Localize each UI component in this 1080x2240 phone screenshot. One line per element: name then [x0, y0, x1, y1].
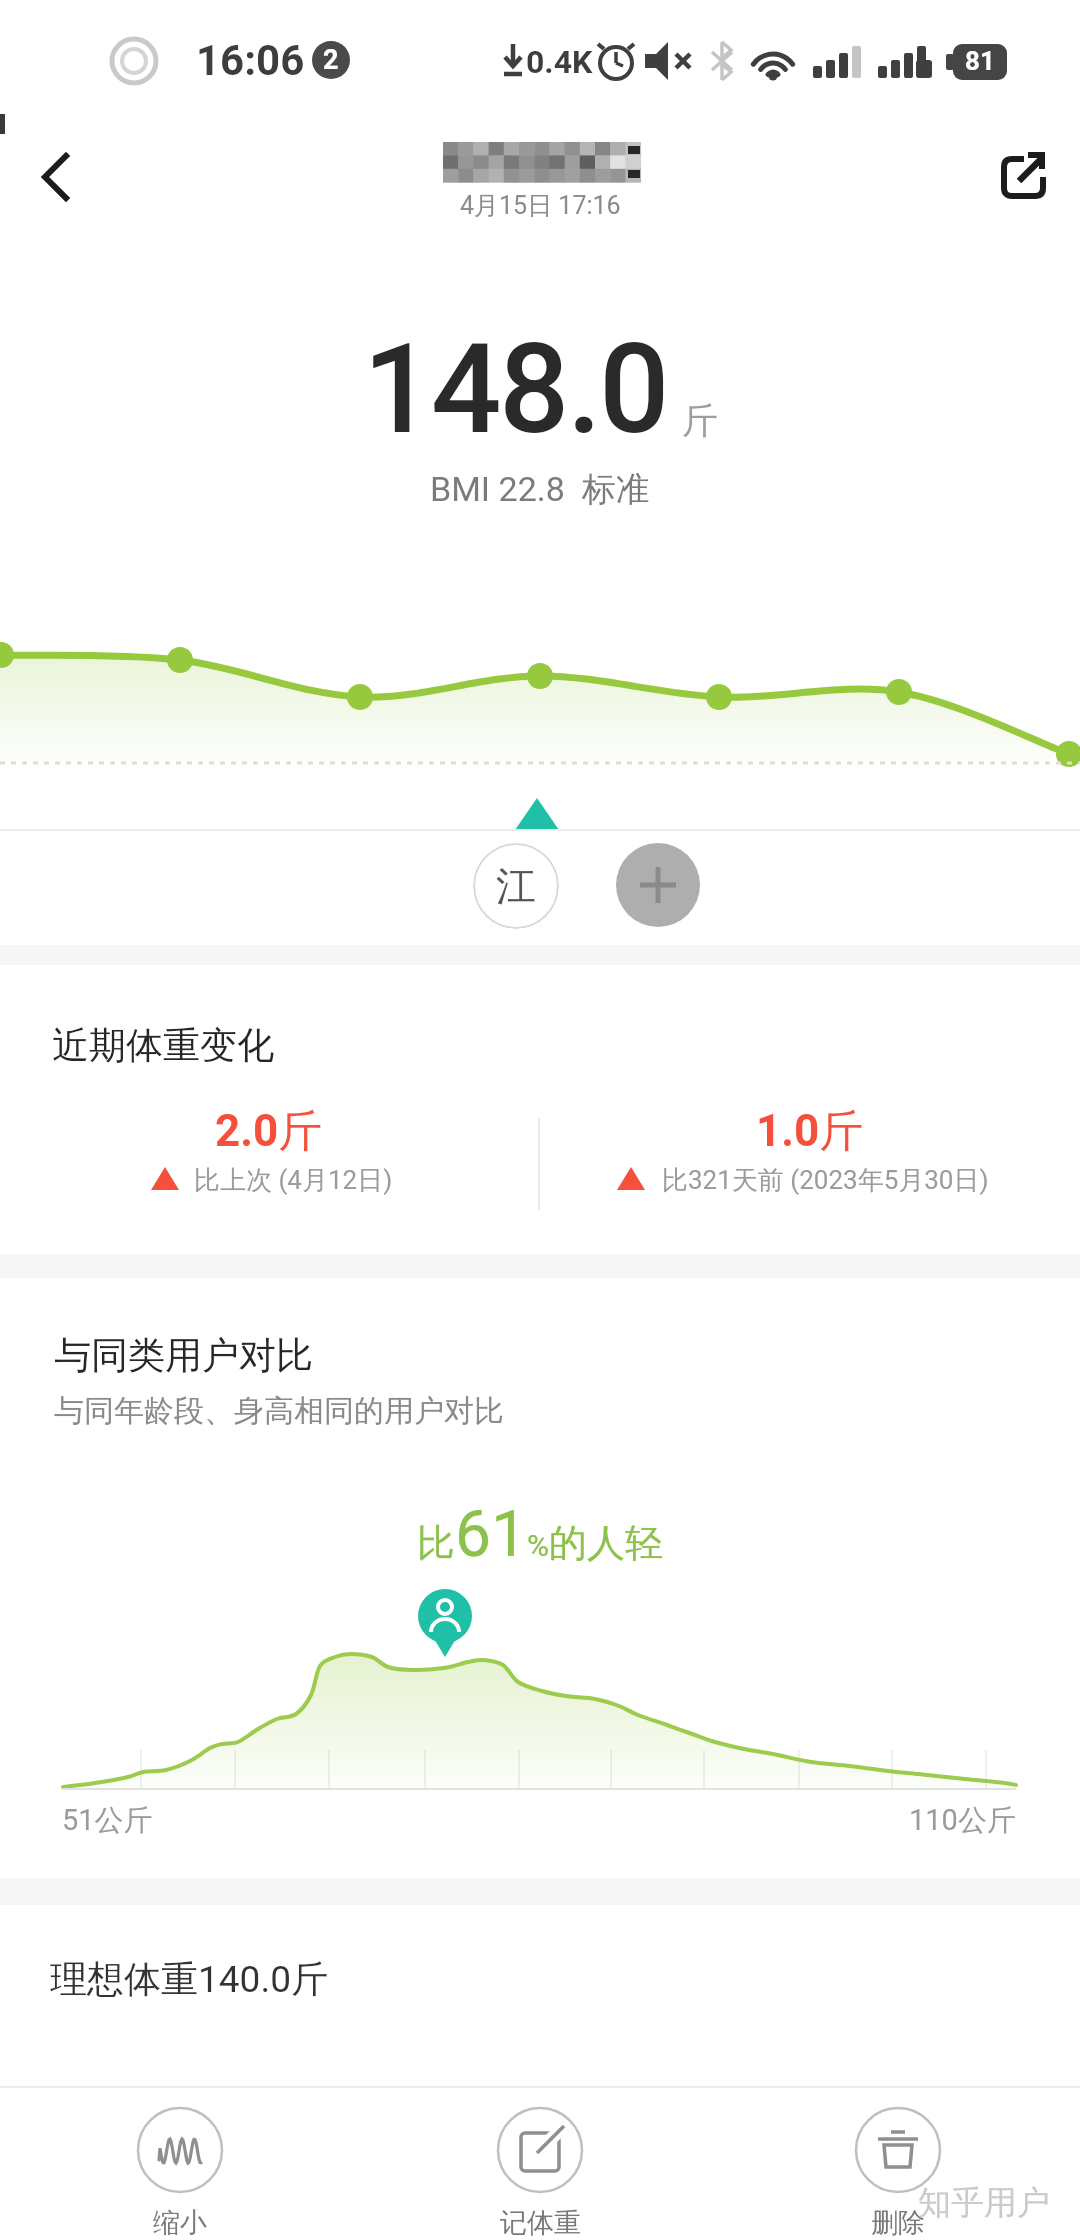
staticText: 近期体重变化	[52, 1022, 274, 1069]
staticText: 1.0斤	[756, 1104, 864, 1159]
staticText: 4月15日 17:16	[460, 190, 621, 221]
staticText: 2.0斤	[215, 1104, 323, 1159]
button[interactable]: 记体重	[460, 2106, 620, 2240]
staticText: 比61%的人轻	[417, 1497, 663, 1572]
staticText: 110公斤	[909, 1802, 1016, 1839]
button[interactable]: 缩小	[100, 2106, 260, 2240]
staticText: 江	[496, 861, 536, 911]
staticText: 比上次 (4月12日)	[194, 1164, 393, 1197]
staticText: 0.4K	[526, 43, 593, 81]
staticText: 148.0	[363, 317, 668, 462]
staticText: 16:06	[196, 36, 305, 85]
staticText: 删除	[871, 2206, 925, 2240]
staticText: 51公斤	[62, 1802, 153, 1839]
staticText: 比321天前 (2023年5月30日)	[662, 1164, 989, 1197]
staticText: 缩小	[153, 2206, 207, 2240]
staticText: 81	[965, 46, 995, 76]
button[interactable]	[616, 843, 700, 927]
staticText: 知乎用户	[918, 2182, 1050, 2224]
button[interactable]: 删除	[818, 2106, 978, 2240]
button[interactable]	[990, 142, 1056, 206]
staticText: 与同类用户对比	[54, 1332, 313, 1379]
button[interactable]: 江	[473, 843, 559, 929]
staticText: 记体重	[500, 2206, 581, 2240]
staticText: 与同年龄段、身高相同的用户对比	[54, 1392, 504, 1430]
button[interactable]	[24, 150, 84, 206]
staticText: BMI 22.8 标准	[430, 468, 650, 511]
staticText: 理想体重140.0斤	[50, 1956, 328, 2003]
staticText: 2	[323, 44, 339, 76]
staticText: 斤	[682, 398, 718, 443]
